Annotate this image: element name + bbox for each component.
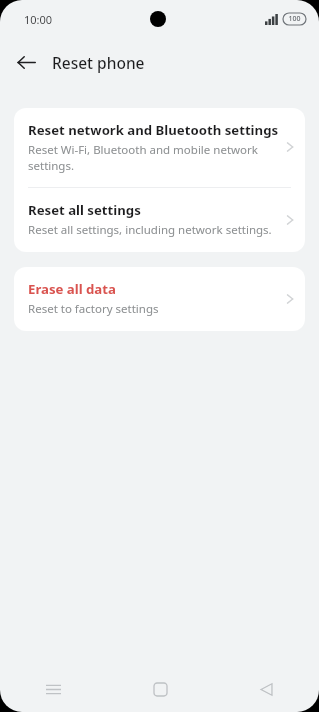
staticText: Reset network and Bluetooth settings	[28, 121, 279, 139]
staticText: Reset to factory settings	[28, 301, 159, 317]
staticText: Reset all settings, including network se…	[28, 222, 272, 238]
button[interactable]: Reset network and Bluetooth settings	[14, 108, 305, 187]
button[interactable]: Reset all settings	[14, 188, 305, 252]
button[interactable]: Back	[213, 666, 319, 712]
staticText: Reset all settings	[28, 201, 141, 219]
staticText: 100	[288, 14, 301, 24]
button[interactable]: Back	[8, 44, 44, 80]
staticText: Erase all data	[28, 280, 116, 298]
staticText: Reset phone	[52, 52, 145, 73]
staticText: Reset Wi-Fi, Bluetooth and mobile networ…	[28, 142, 279, 173]
button[interactable]: Erase all data	[14, 267, 305, 331]
button[interactable]: Recent apps	[0, 666, 107, 712]
button[interactable]: Home	[107, 666, 213, 712]
staticText: 10:00	[24, 12, 53, 27]
